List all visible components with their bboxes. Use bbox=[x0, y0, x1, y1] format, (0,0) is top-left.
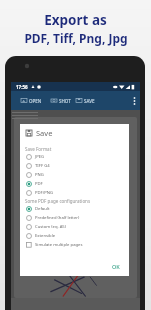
staticText: Some PDF page configurations bbox=[25, 198, 91, 204]
button[interactable]: Custom (eq. A5) bbox=[25, 222, 125, 231]
button[interactable]: PDF/PNG bbox=[25, 188, 125, 197]
staticText: OPEN bbox=[29, 98, 42, 104]
staticText: PNG bbox=[35, 172, 44, 178]
button[interactable]: SAVE bbox=[75, 91, 96, 110]
button[interactable]: Simulate multiple pages bbox=[25, 240, 125, 249]
button[interactable]: PNG bbox=[25, 170, 125, 179]
staticText: Save Format bbox=[25, 146, 52, 152]
staticText: TIFF G4 bbox=[35, 163, 50, 169]
staticText: Extensible bbox=[35, 233, 56, 239]
staticText: JPEG bbox=[35, 154, 45, 160]
staticText: 17:56 bbox=[16, 84, 28, 90]
staticText: Predefined (half letter) bbox=[35, 215, 80, 221]
staticText: PDF, Tiff, Png, Jpg bbox=[24, 30, 128, 46]
staticText: Custom (eq. A5) bbox=[35, 224, 67, 230]
button[interactable]: More options bbox=[129, 91, 139, 110]
button[interactable]: TIFF G4 bbox=[25, 161, 125, 170]
button[interactable]: Extensible bbox=[25, 231, 125, 240]
button[interactable]: SHOT bbox=[50, 91, 72, 110]
button[interactable]: OPEN bbox=[20, 91, 43, 110]
staticText: SHOT bbox=[59, 98, 71, 104]
button[interactable]: Default bbox=[25, 204, 125, 213]
button[interactable]: Predefined (half letter) bbox=[25, 213, 125, 222]
button[interactable]: OK bbox=[108, 260, 124, 272]
staticText: Default bbox=[35, 206, 50, 212]
button[interactable]: PDF bbox=[25, 179, 125, 188]
staticText: Simulate multiple pages bbox=[35, 242, 83, 248]
staticText: OK bbox=[112, 263, 120, 269]
button[interactable]: JPEG bbox=[25, 152, 125, 161]
staticText: Save bbox=[36, 128, 53, 138]
staticText: SAVE bbox=[84, 98, 95, 104]
staticText: PDF bbox=[35, 181, 43, 187]
staticText: Export as bbox=[44, 11, 107, 29]
staticText: PDF/PNG bbox=[35, 190, 54, 196]
